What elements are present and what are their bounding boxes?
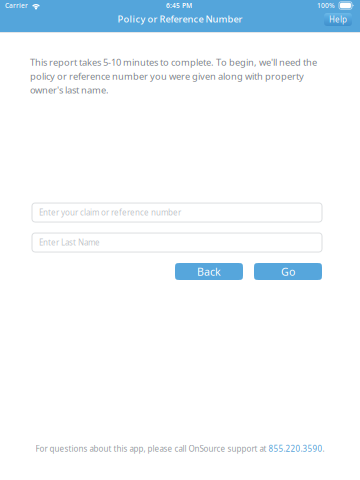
button[interactable]: Enter Last Name: [32, 233, 322, 252]
staticText: For questions about this app, please cal…: [35, 443, 268, 454]
button[interactable]: Help: [324, 13, 352, 26]
staticText: This report takes 5-10 minutes to comple…: [30, 56, 317, 96]
button[interactable]: Back: [175, 263, 243, 280]
staticText: 100%: [317, 1, 335, 10]
button[interactable]: 855.220.3590: [268, 443, 322, 454]
button[interactable]: Enter your claim or reference number: [32, 203, 322, 222]
staticText: 6:45 PM: [166, 1, 192, 10]
staticText: Go: [281, 264, 295, 279]
staticText: 855.220.3590: [268, 443, 322, 454]
staticText: Back: [197, 264, 221, 279]
staticText: .: [322, 443, 324, 454]
button[interactable]: Go: [254, 263, 322, 280]
staticText: Enter your claim or reference number: [39, 207, 181, 218]
staticText: Carrier: [5, 1, 28, 10]
staticText: Policy or Reference Number: [117, 13, 242, 25]
staticText: Enter Last Name: [39, 237, 100, 248]
staticText: Help: [329, 14, 347, 25]
